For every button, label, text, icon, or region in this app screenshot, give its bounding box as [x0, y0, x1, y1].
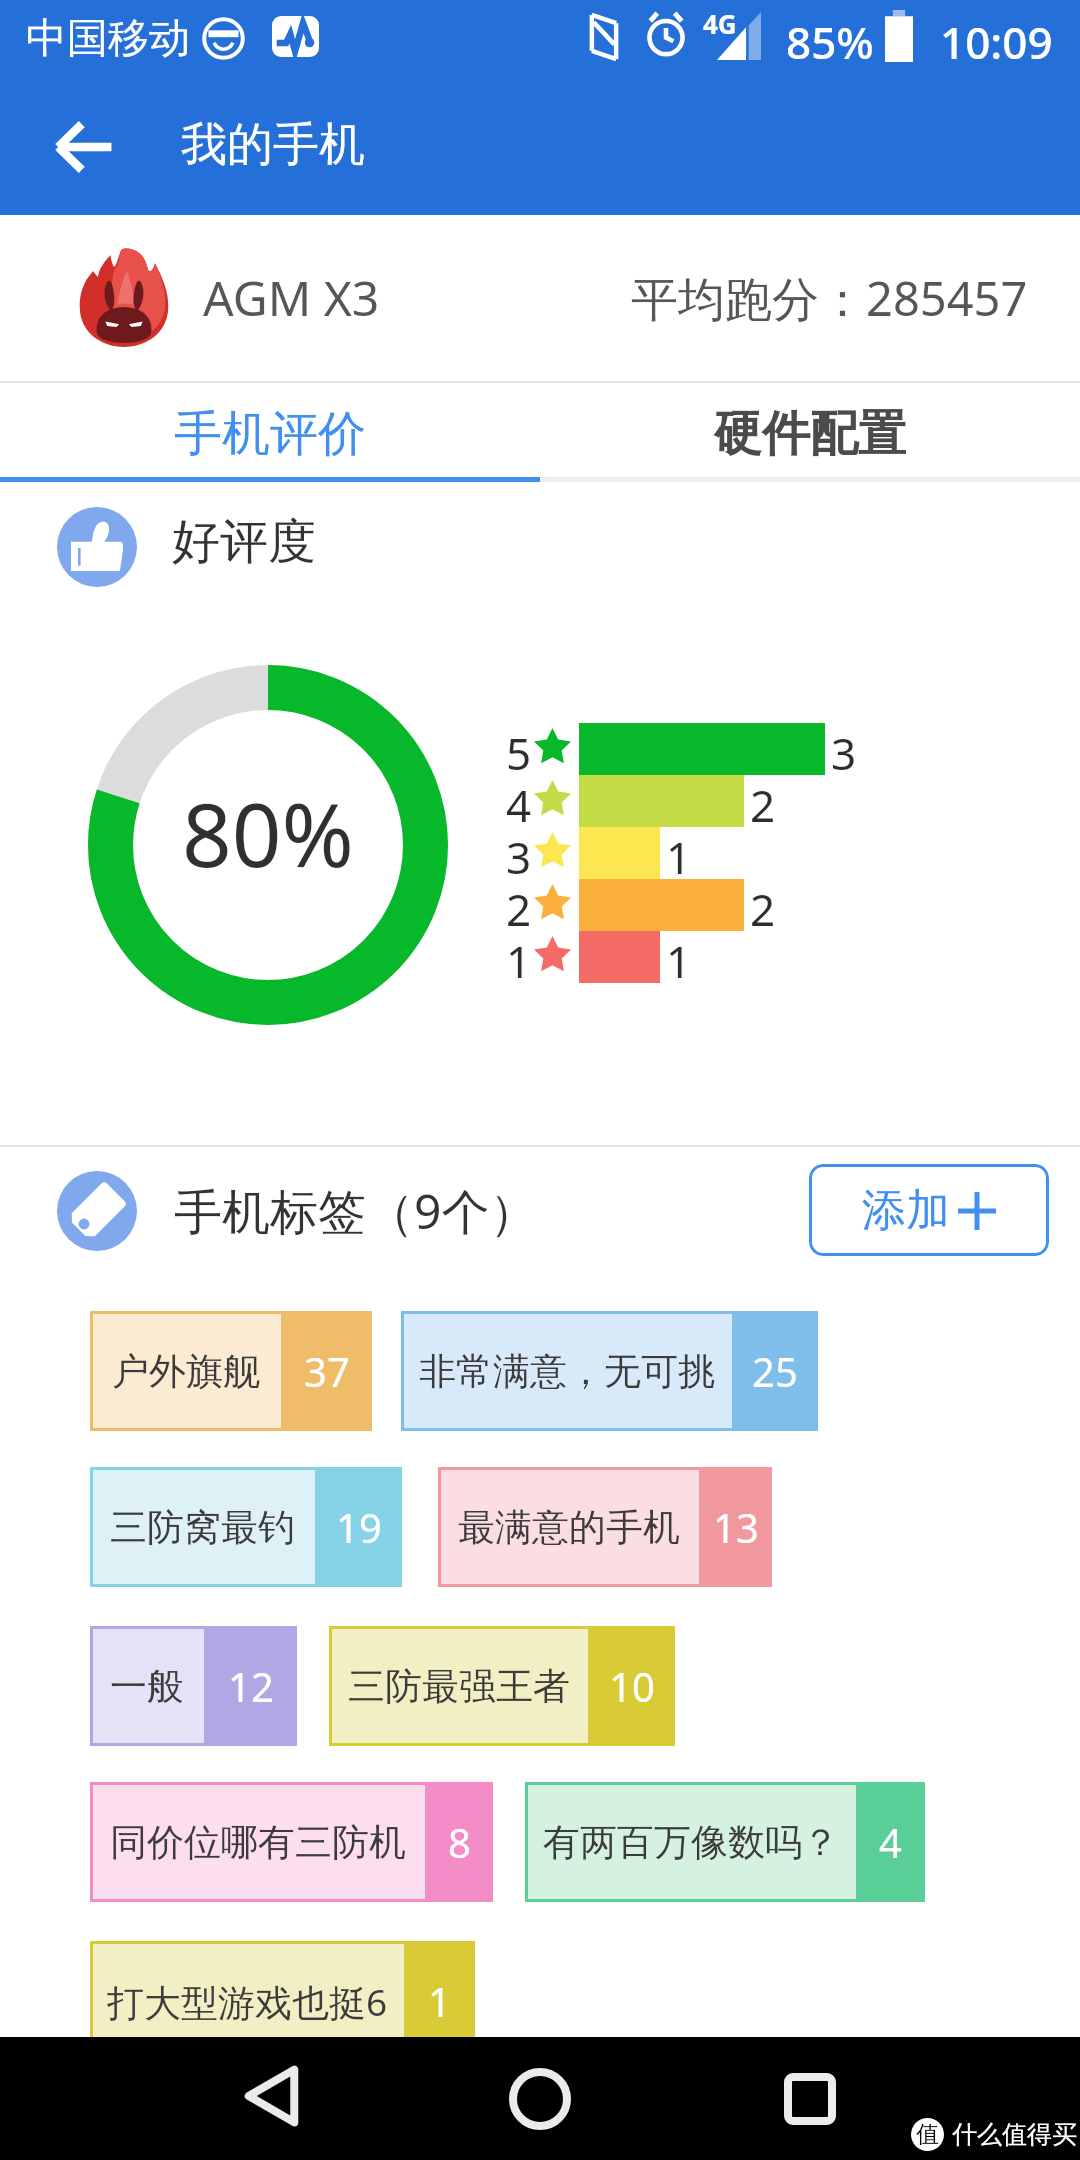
button[interactable]: 三防最强王者: [329, 1626, 675, 1746]
staticText: 同价位哪有三防机: [110, 1819, 406, 1866]
staticText: 19: [336, 1500, 382, 1554]
staticText: 1: [666, 827, 692, 879]
button[interactable]: Back: [42, 105, 126, 189]
staticText: 什么值得买: [952, 2119, 1077, 2150]
staticText: 手机评价: [174, 404, 366, 464]
staticText: 2: [750, 879, 776, 931]
button[interactable]: 硬件配置: [540, 383, 1080, 477]
button[interactable]: 同价位哪有三防机: [90, 1782, 493, 1902]
staticText: 有两百万像数吗？: [543, 1819, 839, 1866]
staticText: 2: [506, 879, 532, 931]
button[interactable]: Back: [228, 2053, 314, 2139]
staticText: 13: [713, 1500, 759, 1554]
staticText: 85%: [786, 12, 874, 72]
button[interactable]: 添加: [809, 1164, 1049, 1256]
staticText: 平均跑分：285457: [631, 266, 1028, 330]
button[interactable]: 户外旗舰: [90, 1311, 372, 1431]
staticText: 三防最强王者: [348, 1663, 570, 1710]
staticText: AGM X3: [203, 265, 380, 330]
button[interactable]: 有两百万像数吗？: [525, 1782, 925, 1902]
staticText: 5: [506, 723, 532, 775]
staticText: 手机标签（9个）: [174, 1178, 538, 1244]
staticText: 1: [506, 931, 532, 983]
staticText: 10:09: [940, 12, 1053, 72]
button[interactable]: 手机评价: [0, 383, 540, 477]
staticText: 最满意的手机: [458, 1504, 680, 1551]
staticText: 2: [750, 775, 776, 827]
staticText: 37: [304, 1344, 350, 1398]
staticText: 12: [228, 1659, 274, 1713]
staticText: 我的手机: [181, 116, 365, 174]
button[interactable]: 非常满意，无可挑: [401, 1311, 818, 1431]
staticText: 8: [448, 1815, 471, 1869]
staticText: 添加: [862, 1183, 950, 1238]
button[interactable]: 三防窝最钓: [90, 1467, 402, 1587]
staticText: 1: [666, 931, 692, 983]
staticText: 80%: [182, 774, 354, 892]
staticText: 中国移动: [26, 13, 190, 65]
button[interactable]: Recent apps: [767, 2056, 853, 2142]
staticText: 三防窝最钓: [110, 1504, 295, 1551]
button[interactable]: 一般: [90, 1626, 297, 1746]
button[interactable]: Home: [497, 2056, 583, 2142]
staticText: 非常满意，无可挑: [419, 1348, 715, 1395]
staticText: 3: [831, 723, 857, 775]
staticText: 好评度: [172, 512, 316, 572]
staticText: 25: [752, 1344, 798, 1398]
staticText: 4G: [703, 6, 737, 41]
button[interactable]: 最满意的手机: [438, 1467, 772, 1587]
staticText: 打大型游戏也挺6: [107, 1976, 388, 2027]
staticText: 4: [506, 775, 532, 827]
staticText: 3: [506, 827, 532, 879]
staticText: 硬件配置: [714, 404, 906, 464]
staticText: 1: [428, 1974, 451, 2028]
staticText: 10: [609, 1659, 655, 1713]
staticText: 户外旗舰: [112, 1348, 260, 1395]
staticText: 4: [879, 1815, 902, 1869]
staticText: 一般: [110, 1663, 184, 1710]
button[interactable]: 打大型游戏也挺6: [90, 1941, 475, 2061]
staticText: 值: [916, 2120, 939, 2149]
